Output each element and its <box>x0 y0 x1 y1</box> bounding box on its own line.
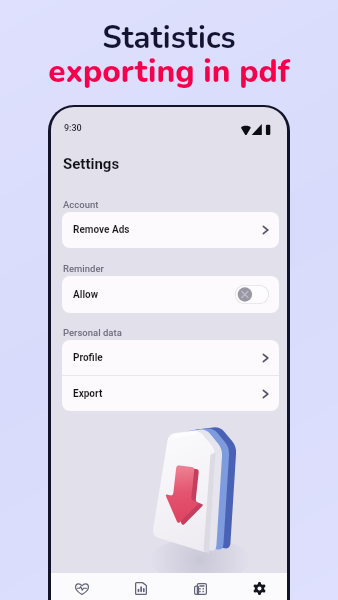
button[interactable]: Allow <box>235 285 269 304</box>
staticText: Reminder <box>63 263 104 274</box>
button[interactable]: Remove Ads <box>62 212 279 248</box>
button[interactable]: Activity <box>51 573 110 600</box>
staticText: Account <box>63 199 99 210</box>
staticText: 9:30 <box>64 123 82 134</box>
button[interactable]: Profile <box>62 340 279 375</box>
staticText: Remove Ads <box>73 224 130 236</box>
staticText: Profile <box>73 352 103 364</box>
staticText: Export <box>73 388 103 400</box>
button[interactable]: Statistics <box>110 573 169 600</box>
staticText: Statistics <box>102 17 236 59</box>
button[interactable]: Allow <box>62 276 279 313</box>
button[interactable]: Export <box>62 376 279 411</box>
button[interactable]: Reports <box>169 573 228 600</box>
button[interactable]: Settings <box>228 573 287 600</box>
staticText: Personal data <box>63 327 122 338</box>
staticText: Allow <box>73 289 99 301</box>
staticText: Settings <box>63 155 120 173</box>
staticText: exporting in pdf <box>48 50 290 93</box>
